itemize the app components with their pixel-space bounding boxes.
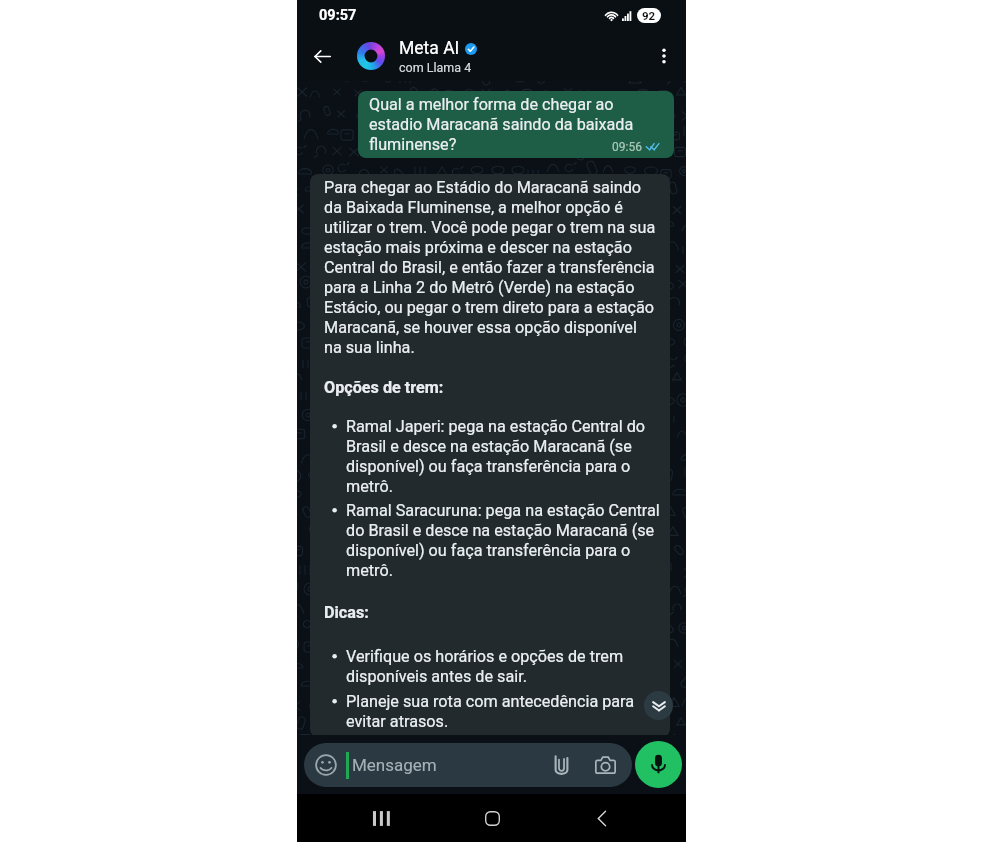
staticText: Planeje sua rota com antecedência para e… <box>346 692 660 731</box>
staticText: Verifique os horários e opções de trem d… <box>346 647 660 686</box>
button[interactable]: Attach <box>546 750 576 780</box>
staticText: com Llama 4 <box>399 60 472 75</box>
staticText: Dicas: <box>324 603 369 622</box>
staticText: Meta AI <box>399 38 460 59</box>
staticText: Ramal Saracuruna: pega na estação Centra… <box>346 501 660 580</box>
button[interactable]: More options <box>642 31 686 81</box>
button[interactable]: Back <box>297 31 347 81</box>
staticText: 09:57 <box>319 7 357 24</box>
staticText: Mensagem <box>352 755 437 775</box>
button[interactable]: Qual a melhor forma de chegar ao estadio… <box>358 91 674 158</box>
staticText: Qual a melhor forma de chegar ao estadio… <box>369 95 665 154</box>
button[interactable]: Home <box>466 794 518 842</box>
button[interactable]: Back <box>576 794 628 842</box>
staticText: Para chegar ao Estádio do Maracanã saind… <box>324 178 657 357</box>
button[interactable]: Para chegar ao Estádio do Maracanã saind… <box>310 174 670 737</box>
button[interactable]: Scroll to bottom <box>644 691 673 720</box>
staticText: 92 <box>642 9 656 22</box>
button[interactable]: Mensagem <box>304 743 632 787</box>
staticText: Opções de trem: <box>324 378 444 397</box>
staticText: Ramal Japeri: pega na estação Central do… <box>346 417 660 496</box>
button[interactable]: Recents <box>355 794 407 842</box>
button[interactable]: Camera <box>590 750 620 780</box>
button[interactable]: Voice message <box>635 741 682 788</box>
staticText: 09:56 <box>612 140 642 154</box>
